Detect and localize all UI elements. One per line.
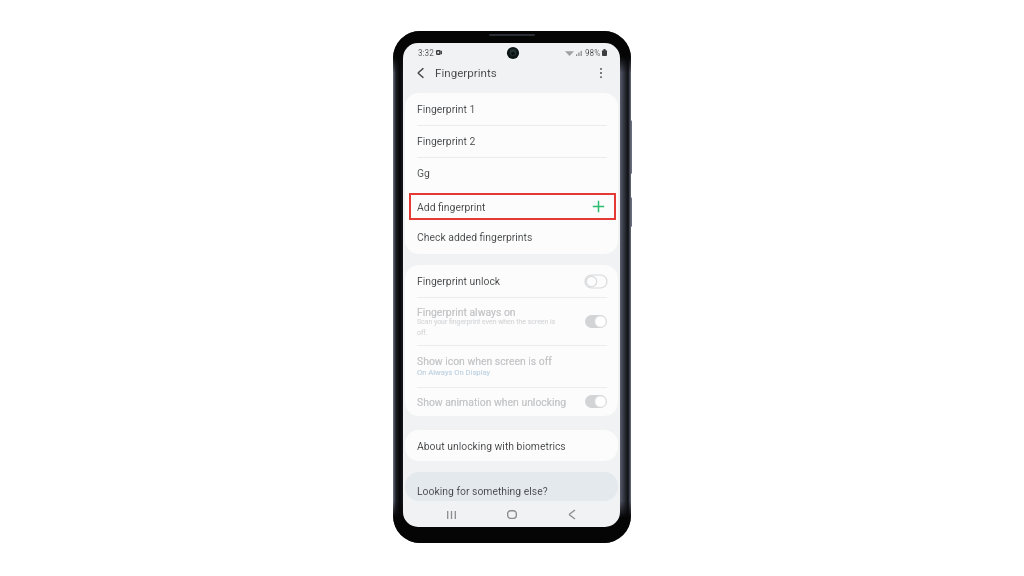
button[interactable]: Show animation when unlocking, on (585, 395, 607, 408)
button[interactable]: Fingerprint always on, on (585, 315, 607, 328)
button[interactable]: Add fingerprint (409, 193, 616, 220)
button[interactable]: Check added fingerprints (405, 221, 618, 253)
button[interactable]: Fingerprint unlock, off (585, 275, 607, 288)
staticText: Gg (417, 167, 430, 179)
staticText: Fingerprint 2 (417, 135, 476, 147)
staticText: Show icon when screen is off (417, 355, 552, 367)
staticText: Show animation when unlocking (417, 396, 567, 408)
button[interactable]: Back (542, 502, 602, 527)
button[interactable]: Navigate up (413, 65, 429, 81)
button[interactable]: Show animation when unlocking (405, 387, 618, 416)
staticText: Looking for something else? (417, 485, 548, 497)
staticText: About unlocking with biometrics (417, 440, 566, 452)
staticText: Fingerprint unlock (417, 275, 501, 287)
staticText: Scan your fingerprint even when the scre… (417, 318, 562, 337)
button[interactable]: Fingerprint always on (405, 297, 618, 345)
staticText: Fingerprints (435, 66, 497, 80)
button[interactable]: Fingerprint 1 (405, 93, 618, 125)
other: Add fingerprint (592, 200, 605, 213)
button[interactable]: Home (482, 502, 542, 527)
button[interactable]: Looking for something else? (405, 472, 618, 501)
button[interactable]: More options (593, 65, 609, 81)
button[interactable]: Fingerprint 2 (405, 125, 618, 157)
button[interactable]: Show icon when screen is off (405, 345, 618, 387)
staticText: On Always On Display (417, 368, 491, 377)
staticText: Fingerprint 1 (417, 103, 476, 115)
staticText: Fingerprint always on (417, 306, 516, 318)
button[interactable]: Gg (405, 157, 618, 189)
button[interactable]: Recent apps (421, 502, 482, 527)
button[interactable]: About unlocking with biometrics (405, 430, 618, 461)
button[interactable]: Fingerprint unlock (405, 265, 618, 297)
staticText: Check added fingerprints (417, 231, 533, 243)
staticText: Add fingerprint (417, 201, 486, 213)
staticText: 98% (585, 48, 601, 58)
staticText: 3:32 (418, 48, 434, 58)
